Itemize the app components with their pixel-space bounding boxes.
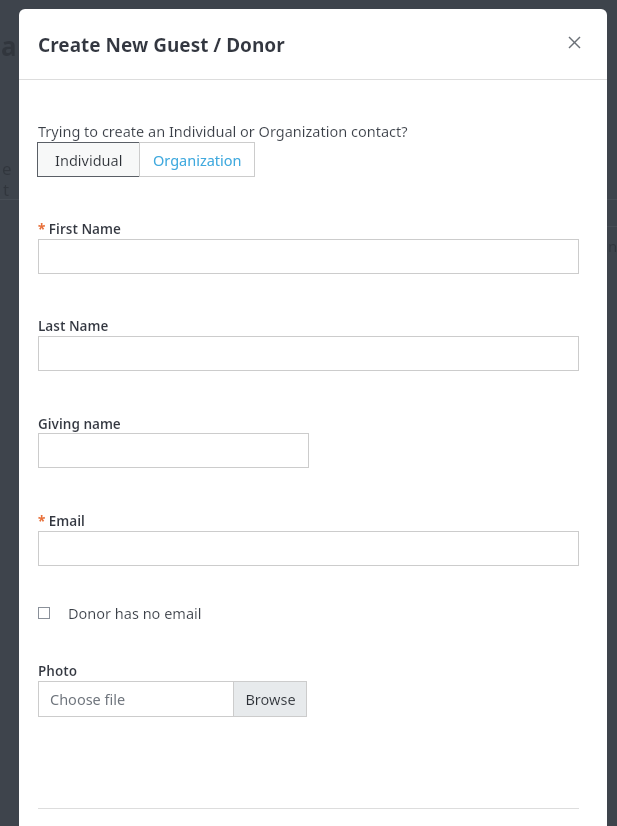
- staticText: Browse: [245, 689, 296, 709]
- button[interactable]: Close: [559, 27, 589, 57]
- button[interactable]: [38, 531, 579, 566]
- staticText: a: [1, 28, 17, 63]
- staticText: Individual: [55, 150, 123, 170]
- staticText: Giving name: [38, 415, 121, 433]
- staticText: Create New Guest / Donor: [38, 32, 285, 58]
- staticText: n: [608, 236, 617, 256]
- button[interactable]: Organization: [139, 142, 255, 177]
- button[interactable]: Choose file: [38, 681, 307, 717]
- staticText: e: [2, 157, 12, 180]
- staticText: Organization: [153, 150, 242, 170]
- staticText: Last Name: [38, 317, 109, 335]
- staticText: t: [3, 178, 10, 201]
- button[interactable]: [38, 433, 309, 468]
- button[interactable]: [38, 336, 579, 371]
- staticText: Photo: [38, 662, 78, 680]
- button[interactable]: Individual: [37, 142, 140, 177]
- staticText: Donor has no email: [68, 603, 202, 623]
- staticText: Trying to create an Individual or Organi…: [38, 121, 408, 141]
- staticText: Choose file: [50, 689, 126, 709]
- staticText: * Email: [38, 512, 85, 530]
- staticText: * First Name: [38, 220, 121, 238]
- button[interactable]: [38, 239, 579, 274]
- button[interactable]: Donor has no email: [38, 599, 202, 627]
